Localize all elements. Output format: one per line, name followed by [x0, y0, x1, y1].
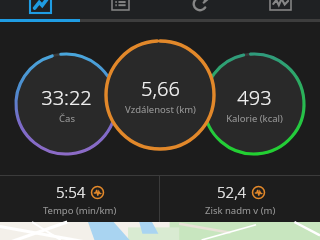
staticText: 52,4	[217, 182, 247, 202]
staticText: Zisk nadm v (m)	[205, 204, 276, 217]
staticText: 5,66	[141, 75, 180, 102]
button[interactable]: Laps	[80, 0, 160, 22]
staticText: Kalorie (kcal)	[226, 112, 283, 125]
staticText: 5:54	[56, 182, 86, 202]
button[interactable]: Activity map	[0, 222, 320, 240]
button[interactable]: Calories 493 kcal	[202, 78, 306, 130]
button[interactable]: Repeat	[160, 0, 240, 22]
button[interactable]: Graphs	[240, 0, 320, 22]
button[interactable]: Time 33:22	[14, 78, 118, 130]
staticText: 33:22	[41, 84, 92, 111]
staticText: Čas	[59, 112, 75, 125]
button[interactable]: Distance 5.66 km	[108, 69, 212, 121]
button[interactable]: Summary	[0, 0, 80, 22]
button[interactable]: 5:54	[0, 175, 159, 222]
button[interactable]: 52,4	[160, 175, 320, 222]
staticText: Vzdálenost (km)	[125, 103, 196, 116]
staticText: 493	[237, 84, 272, 111]
staticText: Tempo (min/km)	[43, 204, 117, 217]
